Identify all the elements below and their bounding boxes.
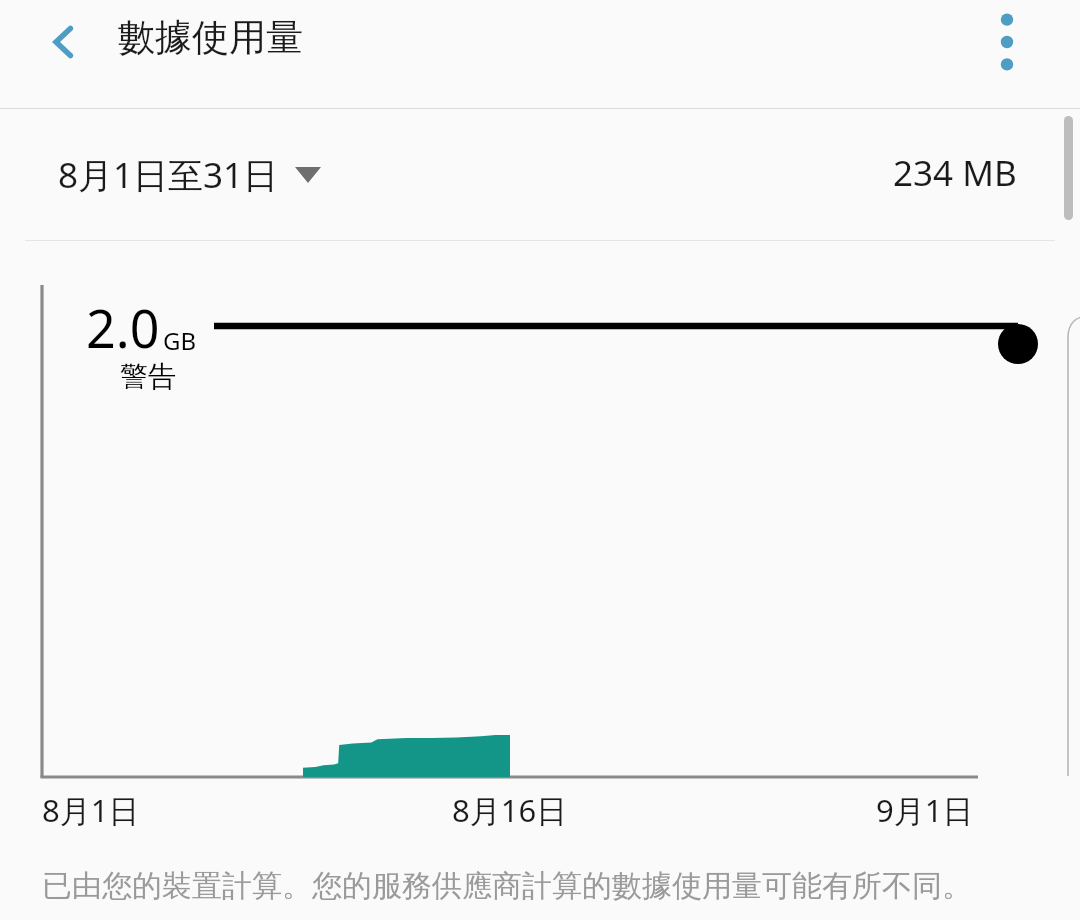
- staticText: 2.0: [86, 292, 160, 363]
- staticText: 已由您的裝置計算。您的服務供應商計算的數據使用量可能有所不同。: [42, 867, 972, 905]
- staticText: 數據使用量: [118, 14, 303, 61]
- staticText: 警告: [120, 359, 176, 394]
- staticText: 8月1日至31日: [58, 151, 279, 199]
- button[interactable]: Back: [28, 6, 100, 78]
- staticText: GB: [163, 324, 197, 357]
- button[interactable]: 8月1日至31日: [58, 151, 321, 199]
- staticText: 8月1日: [42, 789, 140, 831]
- staticText: 8月16日: [452, 789, 568, 831]
- staticText: 234 MB: [893, 149, 1017, 197]
- button[interactable]: More options: [966, 0, 1048, 84]
- staticText: 9月1日: [876, 789, 974, 831]
